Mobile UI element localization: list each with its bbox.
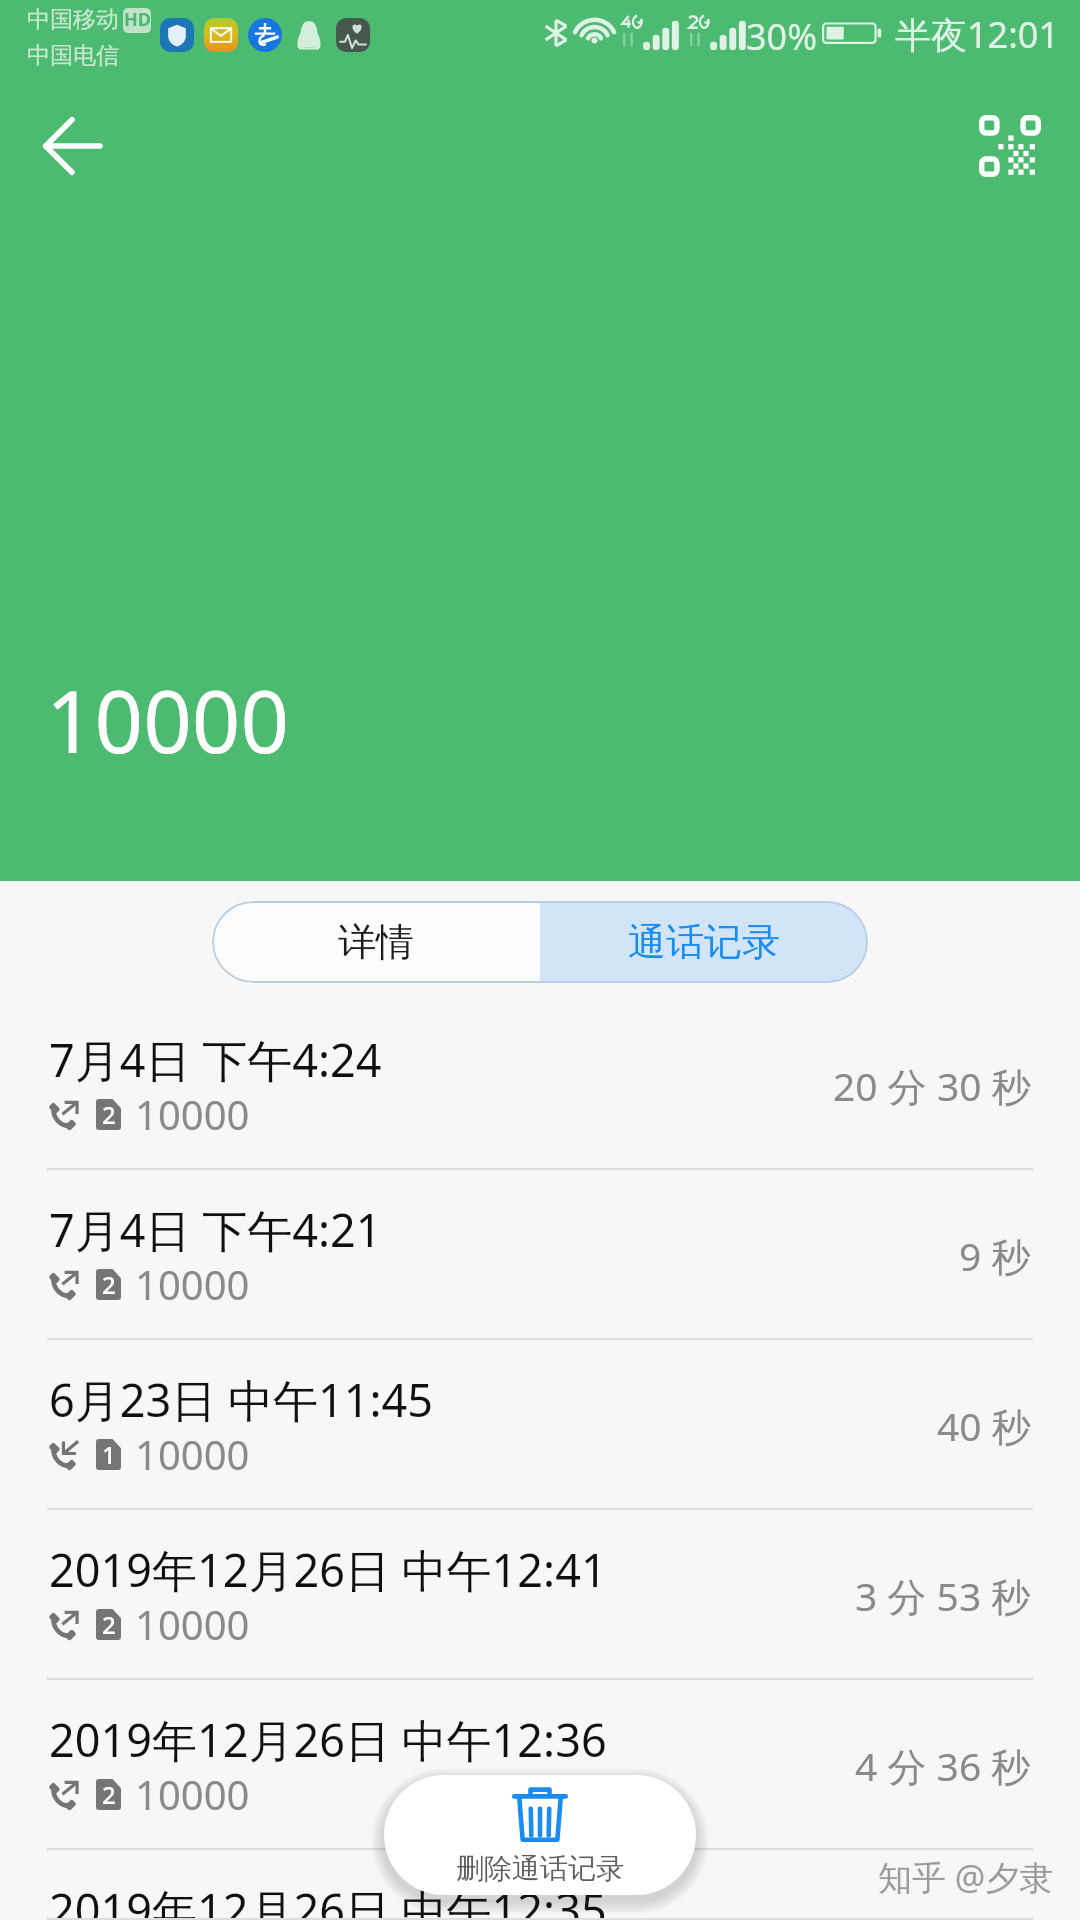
staticText: 中国移动 xyxy=(27,5,119,34)
button[interactable]: 2019年12月26日 中午12:35 xyxy=(0,1850,1080,1920)
staticText: 10000 xyxy=(135,1767,250,1821)
button[interactable]: 详情 xyxy=(212,901,540,983)
staticText: 3 分 53 秒 xyxy=(855,1569,1031,1622)
staticText: 4 分 36 秒 xyxy=(855,1739,1031,1792)
button[interactable]: Back xyxy=(22,96,122,196)
staticText: 7月4日 下午4:24 xyxy=(49,1029,382,1090)
staticText: 10000 xyxy=(135,1087,250,1141)
staticText: 半夜12:01 xyxy=(895,10,1060,59)
staticText: 知乎 @夕隶 xyxy=(878,1854,1054,1900)
staticText: 2 xyxy=(102,1608,116,1639)
button[interactable]: 2019年12月26日 中午12:36 xyxy=(0,1680,1080,1850)
button[interactable]: 2019年12月26日 中午12:41 xyxy=(0,1510,1080,1680)
staticText: 7月4日 下午4:21 xyxy=(49,1199,382,1260)
staticText: 10000 xyxy=(135,1257,250,1311)
button[interactable]: 7月4日 下午4:24 xyxy=(0,1000,1080,1170)
staticText: 2019年12月26日 中午12:41 xyxy=(49,1539,607,1600)
button[interactable]: 7月4日 下午4:21 xyxy=(0,1170,1080,1340)
staticText: 2019年12月26日 中午12:36 xyxy=(49,1709,607,1770)
staticText: 10000 xyxy=(135,1427,250,1481)
staticText: 30% xyxy=(746,12,818,61)
button[interactable]: 删除通话记录 xyxy=(384,1775,696,1895)
button[interactable]: 6月23日 中午11:45 xyxy=(0,1340,1080,1510)
staticText: 通话记录 xyxy=(628,918,780,966)
staticText: 40 秒 xyxy=(937,1399,1031,1452)
staticText: 2 xyxy=(102,1268,116,1299)
staticText: 2 xyxy=(102,1098,116,1129)
staticText: 10000 xyxy=(46,662,290,778)
staticText: 2019年12月26日 中午12:35 xyxy=(49,1879,607,1920)
staticText: 6月23日 中午11:45 xyxy=(49,1369,433,1430)
staticText: 10000 xyxy=(135,1597,250,1651)
staticText: HD xyxy=(124,8,151,32)
staticText: 1 xyxy=(102,1438,116,1469)
staticText: 详情 xyxy=(338,918,414,966)
staticText: 2 xyxy=(102,1778,116,1809)
staticText: 9 秒 xyxy=(959,1229,1031,1282)
staticText: 20 分 30 秒 xyxy=(833,1059,1031,1112)
staticText: 中国电信 xyxy=(27,41,119,70)
button[interactable]: 通话记录 xyxy=(540,901,868,983)
staticText: 删除通话记录 xyxy=(456,1851,624,1886)
button[interactable]: Scan QR code xyxy=(960,96,1060,196)
